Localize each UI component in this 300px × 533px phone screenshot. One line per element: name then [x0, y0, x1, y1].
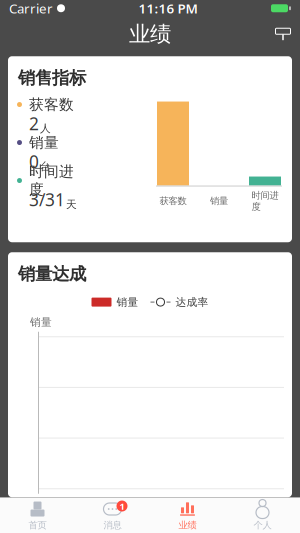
staticText: 销量: [116, 295, 138, 309]
staticText: 获客数: [29, 95, 74, 113]
staticText: 3/31: [29, 188, 65, 211]
staticText: 获客数: [159, 195, 186, 207]
staticText: 时间进度: [251, 189, 278, 212]
staticText: 1: [119, 500, 124, 512]
staticText: 消息: [103, 519, 121, 531]
staticText: 销量达成: [18, 263, 86, 284]
staticText: 0: [29, 150, 39, 173]
staticText: 天: [66, 198, 77, 211]
button[interactable]: 个人: [225, 498, 300, 533]
button[interactable]: 筛选: [266, 19, 300, 49]
staticText: 达成率: [175, 295, 208, 309]
staticText: 个人: [253, 519, 271, 531]
staticText: 销量: [30, 316, 52, 329]
staticText: 销量: [29, 133, 59, 151]
button[interactable]: 业绩: [150, 498, 225, 533]
button[interactable]: 1: [75, 498, 150, 533]
button[interactable]: 首页: [0, 498, 75, 533]
staticText: 11:16 PM: [138, 0, 197, 17]
staticText: 时间进度: [29, 162, 74, 198]
staticText: Carrier: [9, 0, 53, 17]
staticText: 业绩: [178, 519, 196, 531]
staticText: 2: [29, 112, 39, 135]
staticText: 首页: [28, 519, 46, 531]
staticText: 销售指标: [18, 67, 86, 88]
staticText: 业绩: [129, 21, 171, 47]
staticText: 销量: [210, 195, 228, 207]
staticText: 台: [40, 160, 51, 173]
staticText: 人: [40, 122, 51, 135]
